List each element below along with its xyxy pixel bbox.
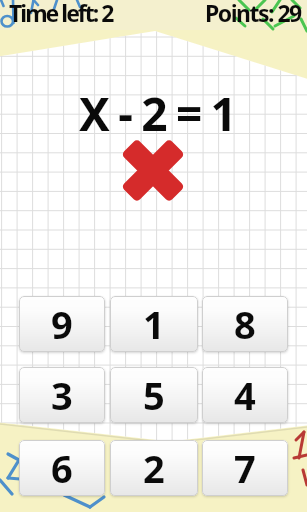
button[interactable]: 8 xyxy=(202,296,288,352)
button[interactable]: 3 xyxy=(19,367,105,423)
button[interactable]: 7 xyxy=(202,440,288,496)
button[interactable]: 4 xyxy=(202,367,288,423)
button[interactable]: 2 xyxy=(110,440,198,496)
staticText: 4 xyxy=(234,369,256,421)
staticText: X - 2 = 1 xyxy=(79,82,236,145)
staticText: 6 xyxy=(51,442,73,494)
button[interactable]: 5 xyxy=(110,367,198,423)
staticText: 5 xyxy=(143,369,165,421)
button[interactable]: 6 xyxy=(19,440,105,496)
button[interactable]: 1 xyxy=(110,296,198,352)
staticText: Points: 29 xyxy=(205,0,301,28)
staticText: 1 xyxy=(143,298,165,350)
staticText: Time left: 2 xyxy=(9,0,113,28)
button[interactable]: 9 xyxy=(19,296,105,352)
staticText: 2 xyxy=(143,442,165,494)
staticText: 3 xyxy=(51,369,73,421)
staticText: 7 xyxy=(234,442,256,494)
other: Wrong answer xyxy=(120,138,186,203)
staticText: 8 xyxy=(234,298,256,350)
staticText: 9 xyxy=(51,298,73,350)
